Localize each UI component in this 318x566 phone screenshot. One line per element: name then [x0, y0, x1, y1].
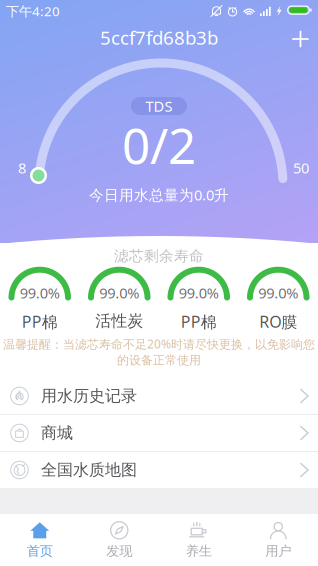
staticText: 今日用水总量为0.0升 — [89, 185, 229, 204]
staticText: 温馨提醒：当滤芯寿命不足20%时请尽快更换，以免影响您 — [3, 336, 315, 352]
button[interactable]: 首页 — [0, 515, 79, 564]
staticText: 5ccf7fd68b3b — [100, 25, 218, 50]
staticText: PP棉 — [181, 311, 217, 332]
staticText: TDS — [145, 96, 172, 116]
staticText: 首页 — [27, 543, 53, 559]
staticText: 0/2 — [122, 112, 196, 177]
staticText: 99.0% — [258, 283, 298, 302]
staticText: 的设备正常使用 — [117, 353, 201, 368]
staticText: 下午4:20 — [6, 2, 60, 20]
staticText: 全国水质地图 — [41, 460, 137, 480]
staticText: 养生 — [186, 543, 212, 559]
button[interactable]: 全国水质地图 — [0, 452, 318, 488]
staticText: 99.0% — [99, 283, 139, 302]
staticText: 活性炭 — [95, 311, 143, 331]
staticText: PP棉 — [22, 311, 58, 332]
staticText: 99.0% — [179, 283, 219, 302]
staticText: 50 — [293, 158, 309, 177]
staticText: 99.0% — [20, 283, 60, 302]
staticText: 8 — [18, 158, 26, 177]
button[interactable]: Add device — [283, 21, 318, 56]
button[interactable]: 养生 — [159, 515, 238, 564]
staticText: RO膜 — [259, 311, 297, 332]
button[interactable]: 发现 — [79, 515, 159, 564]
button[interactable]: 用水历史记录 — [0, 378, 318, 414]
staticText: 滤芯剩余寿命 — [114, 247, 204, 265]
staticText: 发现 — [106, 543, 132, 559]
button[interactable]: 用户 — [238, 515, 318, 564]
staticText: 用户 — [265, 543, 291, 559]
staticText: 商城 — [41, 423, 73, 443]
staticText: 用水历史记录 — [41, 386, 137, 406]
button[interactable]: 商城 — [0, 415, 318, 451]
